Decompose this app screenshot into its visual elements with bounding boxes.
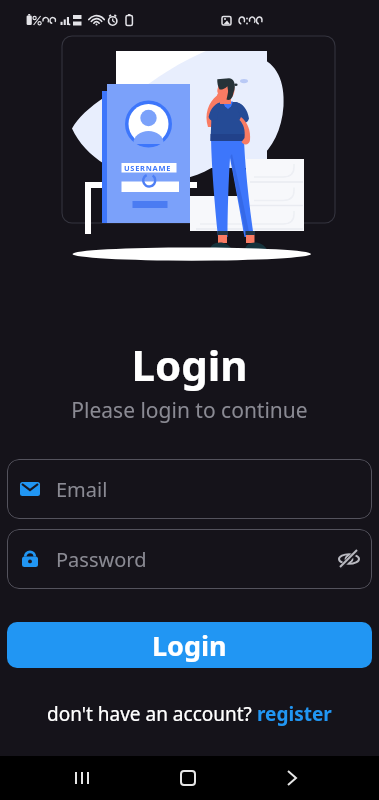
button[interactable]: Email — [7, 459, 372, 519]
staticText: Please login to continue — [0, 396, 379, 425]
staticText: Password — [56, 546, 147, 573]
button[interactable]: register — [257, 701, 332, 727]
staticText: register — [257, 701, 332, 727]
button[interactable]: Login — [7, 622, 372, 668]
button[interactable]: Show password — [336, 546, 362, 572]
staticText: Email — [56, 476, 108, 503]
staticText: don't have an account? — [47, 701, 257, 727]
button[interactable]: Password — [7, 529, 372, 589]
staticText: Login — [0, 336, 379, 393]
staticText: USERNAME — [124, 163, 172, 173]
staticText: Login — [152, 627, 227, 664]
